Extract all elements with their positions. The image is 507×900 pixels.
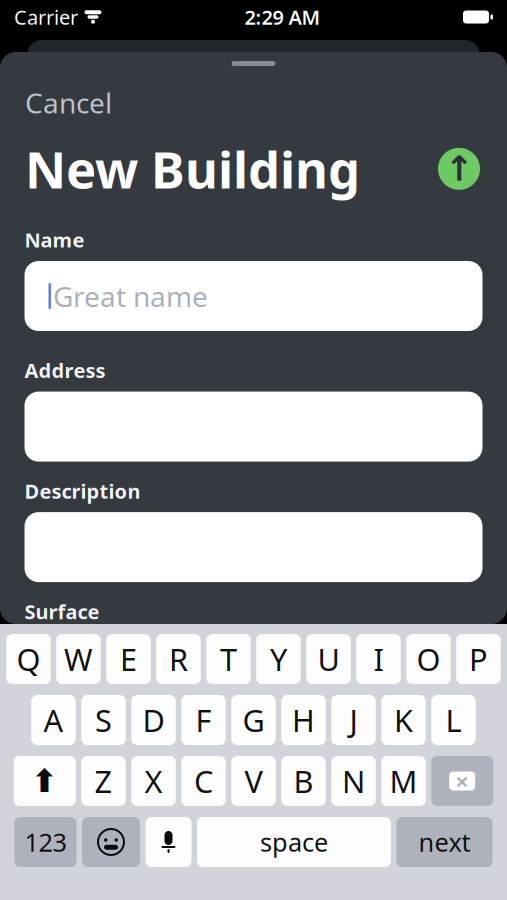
button[interactable]: Delete <box>431 756 493 806</box>
button[interactable]: U <box>306 634 351 684</box>
staticText: Description <box>24 478 140 504</box>
staticText: U <box>317 639 339 679</box>
button[interactable]: W <box>56 634 101 684</box>
staticText: T <box>220 639 237 679</box>
staticText: Name <box>24 226 84 253</box>
button[interactable]: Shift <box>14 756 76 806</box>
button[interactable]: A <box>31 695 76 745</box>
button[interactable]: T <box>206 634 251 684</box>
button[interactable]: O <box>406 634 451 684</box>
staticText: H <box>292 700 315 740</box>
button[interactable]: C <box>181 756 226 806</box>
staticText: V <box>244 761 262 801</box>
button[interactable]: B <box>281 756 326 806</box>
button[interactable]: M <box>381 756 426 806</box>
button[interactable]: H <box>281 695 326 745</box>
staticText: G <box>242 700 264 740</box>
staticText: Surface <box>24 598 99 625</box>
button[interactable]: Cancel <box>25 80 112 125</box>
button[interactable]: F <box>181 695 226 745</box>
button[interactable] <box>24 512 482 582</box>
staticText: Carrier <box>14 4 78 30</box>
staticText: Y <box>270 639 287 679</box>
button[interactable]: G <box>231 695 276 745</box>
staticText: C <box>194 761 213 801</box>
staticText: ↑ <box>444 149 473 188</box>
staticText: J <box>349 700 357 740</box>
staticText: K <box>394 700 413 740</box>
staticText: × <box>455 765 469 797</box>
button[interactable]: N <box>331 756 376 806</box>
staticText: next <box>418 825 470 859</box>
staticText: D <box>142 700 164 740</box>
staticText: New Building <box>25 135 360 202</box>
button[interactable]: Dictation <box>145 817 191 867</box>
staticText: A <box>43 700 63 740</box>
button[interactable]: Q <box>6 634 51 684</box>
staticText: 2:29 AM <box>244 4 320 30</box>
staticText: L <box>445 700 461 740</box>
button[interactable]: D <box>131 695 176 745</box>
button[interactable]: Y <box>256 634 301 684</box>
button[interactable]: X <box>131 756 176 806</box>
button[interactable] <box>24 633 482 703</box>
button[interactable]: K <box>381 695 426 745</box>
button[interactable]: 123 <box>14 817 76 867</box>
staticText: E <box>120 639 137 679</box>
staticText: M <box>389 761 417 801</box>
button[interactable]: J <box>331 695 376 745</box>
staticText: B <box>293 761 313 801</box>
button[interactable]: S <box>81 695 126 745</box>
button[interactable] <box>24 392 482 462</box>
button[interactable]: Emoji <box>82 817 140 867</box>
button[interactable]: Z <box>81 756 126 806</box>
button[interactable]: I <box>356 634 401 684</box>
staticText: R <box>169 639 188 679</box>
button[interactable]: V <box>231 756 276 806</box>
staticText: I <box>373 639 383 679</box>
staticText: Q <box>16 639 40 679</box>
button[interactable]: P <box>456 634 501 684</box>
staticText: 123 <box>24 825 66 859</box>
staticText: N <box>342 761 365 801</box>
staticText: Z <box>94 761 112 801</box>
staticText: O <box>416 639 440 679</box>
button[interactable]: space <box>197 817 391 867</box>
staticText: P <box>469 639 488 679</box>
staticText: space <box>260 825 328 859</box>
button[interactable]: next <box>396 817 492 867</box>
staticText: X <box>144 761 162 801</box>
staticText: S <box>95 700 112 740</box>
staticText: F <box>195 700 211 740</box>
button[interactable]: R <box>156 634 201 684</box>
button[interactable]: Great name <box>24 261 482 331</box>
button[interactable]: L <box>431 695 476 745</box>
staticText: Great name <box>53 277 208 315</box>
staticText: W <box>64 639 93 679</box>
button[interactable]: E <box>106 634 151 684</box>
button[interactable]: Save building <box>436 146 482 192</box>
staticText: Address <box>24 357 105 384</box>
staticText: ⬆ <box>31 763 58 799</box>
staticText: Cancel <box>25 84 112 121</box>
